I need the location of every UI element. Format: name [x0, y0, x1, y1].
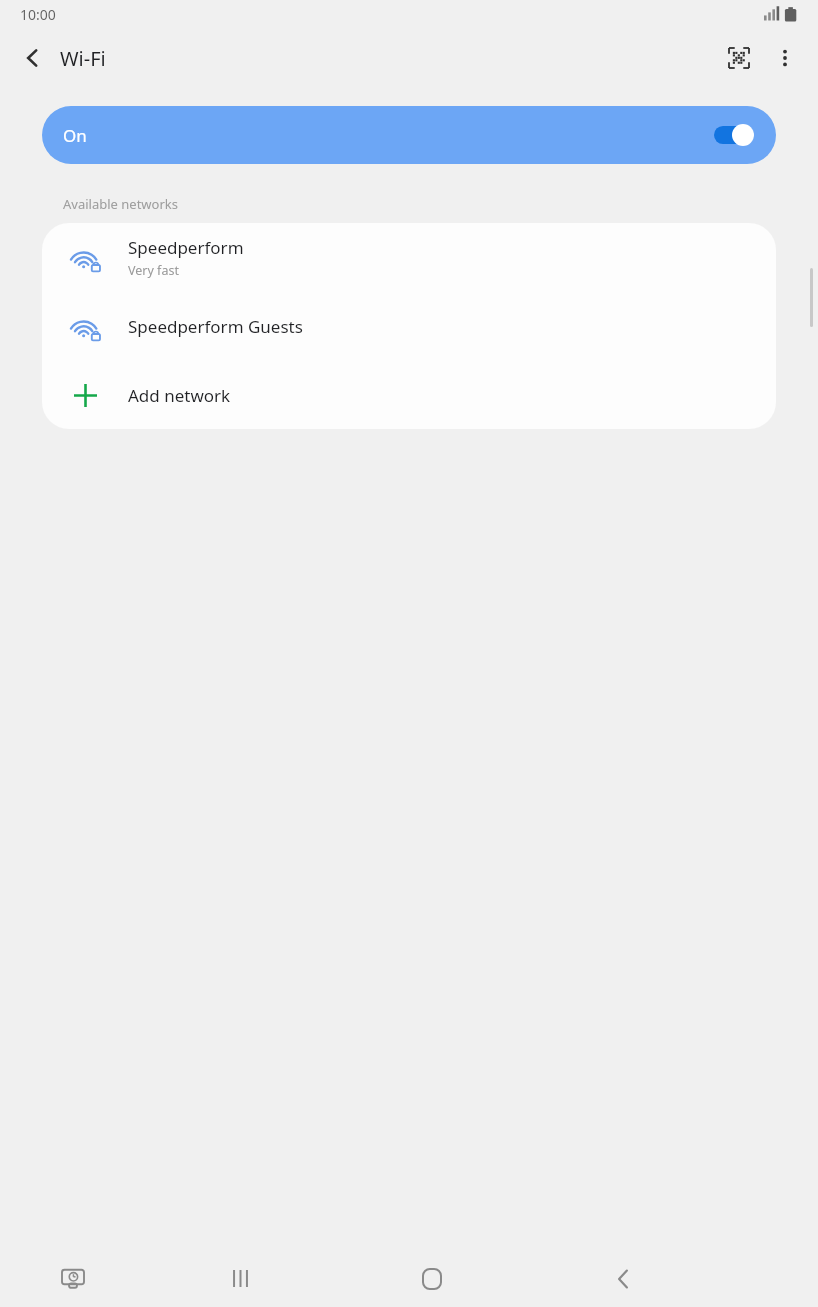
- button[interactable]: More options: [762, 35, 808, 81]
- button[interactable]: Add network: [42, 361, 776, 429]
- staticText: Speedperform Guests: [128, 315, 303, 338]
- button[interactable]: Screen capture: [0, 1250, 145, 1307]
- staticText: On: [63, 124, 87, 147]
- staticText: Wi-Fi: [60, 45, 106, 72]
- button[interactable]: Scan QR code: [716, 35, 762, 81]
- button[interactable]: On: [42, 106, 776, 164]
- button[interactable]: Home: [336, 1250, 527, 1307]
- button[interactable]: Back: [527, 1250, 718, 1307]
- staticText: 10:00: [20, 5, 56, 24]
- staticText: Speedperform: [128, 236, 244, 259]
- button[interactable]: Speedperform: [42, 223, 776, 292]
- staticText: Add network: [128, 384, 231, 407]
- button[interactable]: Speedperform Guests: [42, 292, 776, 361]
- button[interactable]: Recents: [145, 1250, 336, 1307]
- staticText: Available networks: [63, 195, 178, 213]
- staticText: Very fast: [128, 262, 179, 279]
- other: Back: [12, 37, 54, 79]
- button[interactable]: Back: [12, 37, 106, 79]
